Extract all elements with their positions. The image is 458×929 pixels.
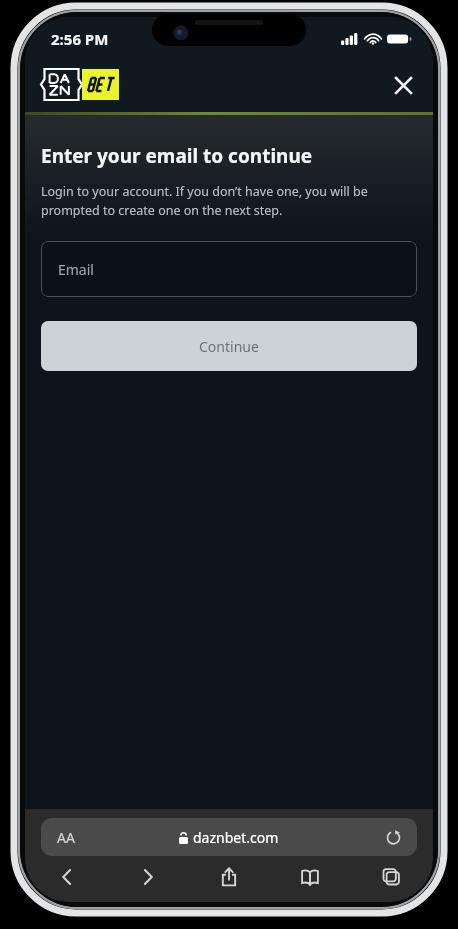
button[interactable]: Close (383, 65, 423, 105)
button[interactable]: AA (41, 818, 417, 856)
button[interactable]: Share (201, 857, 257, 897)
button[interactable]: Email (41, 241, 417, 297)
staticText: daznbet.com (193, 828, 279, 847)
staticText: Continue (199, 337, 259, 356)
button[interactable]: Back (39, 857, 95, 897)
staticText: AA (57, 828, 75, 847)
button[interactable]: Bookmarks (282, 857, 338, 897)
button[interactable]: Continue (41, 321, 417, 371)
button[interactable]: Tabs (363, 857, 419, 897)
staticText: Enter your email to continue (41, 143, 417, 169)
staticText: 2:56 PM (51, 29, 109, 49)
button[interactable]: Reload (379, 823, 407, 851)
button[interactable]: Forward (120, 857, 176, 897)
staticText: Login to your account. If you don’t have… (41, 183, 417, 219)
staticText: Email (58, 260, 94, 279)
